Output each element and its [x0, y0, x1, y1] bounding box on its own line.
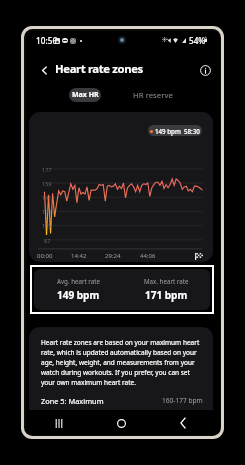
button[interactable]	[29, 327, 213, 410]
staticText: Heart rate zones are based on your maxim…	[41, 338, 202, 387]
staticText: 160-177 bpm	[162, 396, 203, 405]
staticText: 123	[42, 208, 52, 215]
staticText: 58:30	[184, 127, 200, 135]
staticText: 177	[42, 166, 52, 173]
staticText: 10:56	[36, 35, 58, 46]
staticText: 54%	[189, 35, 206, 46]
button[interactable]: Max HR	[69, 88, 101, 102]
button[interactable]: Avg. heart rate	[34, 269, 122, 310]
staticText: 149 bpm	[57, 288, 100, 302]
button[interactable]: Back	[36, 62, 52, 78]
staticText: 105	[42, 222, 52, 229]
button[interactable]: Recents	[28, 412, 90, 434]
staticText: Zone 5: Maximum	[41, 396, 104, 406]
staticText: 44:06	[140, 252, 156, 260]
button[interactable]: Back	[152, 412, 214, 434]
staticText: 141	[42, 194, 52, 201]
staticText: 149 bpm	[155, 127, 181, 135]
staticText: HR reserve	[133, 90, 173, 101]
button[interactable]: Max. heart rate	[122, 269, 210, 310]
staticText: 159	[42, 180, 52, 187]
button[interactable]: HR reserve	[132, 88, 174, 102]
staticText: Avg. heart rate	[57, 277, 100, 285]
staticText: 00:00	[37, 252, 53, 260]
staticText: Max. heart rate	[144, 277, 189, 285]
staticText: Max HR	[72, 90, 99, 100]
staticText: 29:24	[105, 252, 121, 260]
staticText: 171 bpm	[145, 288, 188, 302]
button[interactable]: Information	[197, 62, 213, 78]
staticText: 14:42	[71, 252, 87, 260]
button[interactable]: Finish flag	[194, 251, 204, 261]
button[interactable]: Home	[90, 412, 152, 434]
staticText: Heart rate zones	[55, 61, 143, 76]
staticText: 87	[44, 237, 51, 244]
